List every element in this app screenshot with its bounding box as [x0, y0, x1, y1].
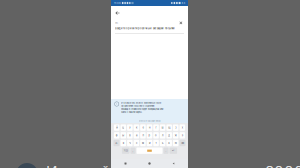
staticText: Разница в стоимости будет возвращена или	[121, 108, 163, 110]
staticText: и	[149, 141, 150, 145]
staticText: 11:08	[114, 1, 121, 5]
button[interactable]: й	[114, 124, 119, 131]
button[interactable]: б	[166, 140, 172, 146]
button[interactable]: ⇧	[113, 140, 119, 146]
staticText: я	[123, 141, 124, 145]
staticText: е	[142, 126, 143, 129]
staticText: н	[149, 126, 150, 129]
button[interactable]: ,	[130, 147, 135, 154]
button[interactable]: з	[173, 124, 178, 131]
staticText: Игровой ноутбук	[46, 163, 174, 168]
button[interactable]: Домой	[141, 159, 157, 168]
staticText: ч	[129, 141, 130, 145]
button[interactable]: ш	[160, 124, 165, 131]
staticText: а	[136, 134, 137, 137]
button[interactable]: ь	[160, 140, 165, 146]
button[interactable]: г	[153, 124, 159, 131]
staticText: в	[129, 134, 130, 137]
button[interactable]: а	[134, 132, 139, 138]
button[interactable]: и	[147, 140, 152, 146]
button[interactable]: я	[120, 140, 126, 146]
staticText: i	[116, 103, 117, 105]
button[interactable]: в	[127, 132, 133, 138]
staticText: ж	[175, 134, 177, 137]
button[interactable]: ж	[173, 132, 178, 138]
button[interactable]: п	[140, 132, 146, 138]
button[interactable]: р	[147, 132, 152, 138]
button[interactable]: ↵	[169, 147, 177, 154]
button[interactable]: к	[134, 124, 139, 131]
staticText: з	[175, 126, 176, 129]
staticText: ?123	[124, 149, 128, 152]
staticText: Итоговый вес может измениться после	[121, 101, 161, 104]
staticText: щ	[168, 126, 170, 129]
staticText: й	[116, 126, 117, 129]
staticText: ц	[122, 126, 124, 129]
button[interactable]: ч	[127, 140, 133, 146]
staticText: ↵	[172, 149, 175, 152]
button[interactable]: ы	[120, 132, 126, 138]
staticText: м	[142, 141, 144, 145]
button[interactable]: Назад	[165, 159, 181, 168]
button[interactable]: ф	[114, 132, 119, 138]
staticText: от 20000	[245, 163, 300, 168]
button[interactable]: э	[179, 132, 185, 138]
staticText: ы	[122, 134, 124, 137]
staticText: о	[155, 134, 157, 137]
staticText: с	[136, 141, 137, 145]
button[interactable]: с	[134, 140, 139, 146]
staticText: Вес	[115, 22, 118, 24]
button[interactable]: щ	[166, 124, 172, 131]
staticText: у	[129, 126, 130, 129]
staticText: ф	[116, 134, 118, 137]
staticText: л	[162, 134, 163, 137]
button[interactable]: Обзор	[117, 159, 133, 168]
staticText: ь	[162, 141, 163, 145]
staticText: д	[168, 134, 170, 137]
staticText: ш	[162, 126, 164, 129]
staticText: х	[182, 126, 183, 129]
staticText: п	[142, 134, 143, 137]
button[interactable]: о	[153, 132, 159, 138]
button[interactable]: ю	[173, 140, 178, 146]
staticText: 84	[181, 1, 185, 5]
staticText: оформления посылки в отделении.	[121, 105, 155, 107]
staticText: ю	[175, 141, 177, 145]
button[interactable]: ⌫	[179, 140, 185, 146]
staticText: э	[182, 134, 183, 137]
staticText: ⌫	[181, 141, 184, 145]
button[interactable]: Очистить	[178, 20, 184, 26]
button[interactable]: Back	[111, 6, 188, 20]
staticText: г	[156, 126, 157, 129]
button[interactable]: л	[160, 132, 165, 138]
staticText: ⇧	[115, 141, 118, 145]
button[interactable]: ?123	[122, 147, 129, 154]
staticText: Ответы и быстрый набор	[138, 120, 160, 122]
staticText: ,	[132, 149, 133, 152]
button[interactable]: ц	[120, 124, 126, 131]
button[interactable]: .	[163, 147, 168, 154]
staticText: снята с вашей карты.	[121, 111, 143, 114]
button[interactable]: х	[179, 124, 185, 131]
button[interactable]: д	[166, 132, 172, 138]
button[interactable]: н	[147, 124, 152, 131]
button[interactable]: Пробел	[136, 147, 162, 154]
button[interactable]: т	[153, 140, 159, 146]
staticText: р	[148, 134, 150, 137]
staticText: т	[156, 141, 157, 145]
button[interactable]: е	[140, 124, 146, 131]
button[interactable]: у	[127, 124, 133, 131]
button[interactable]: м	[140, 140, 146, 146]
staticText: б	[168, 141, 170, 145]
staticText: к	[136, 126, 137, 129]
staticText: Введите ориентировочный вес вашей посылк…	[115, 27, 175, 30]
